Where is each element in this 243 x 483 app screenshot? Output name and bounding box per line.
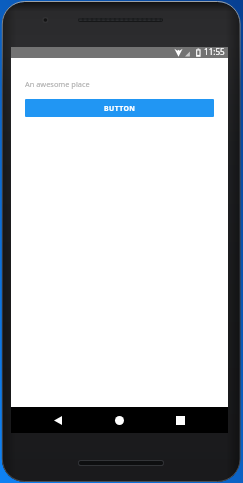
staticText: 11:55 xyxy=(204,46,225,57)
staticText: BUTTON xyxy=(104,104,136,113)
button[interactable]: BUTTON xyxy=(25,99,214,117)
button[interactable]: Recent apps xyxy=(163,407,197,433)
button[interactable]: Home xyxy=(102,407,136,433)
button[interactable]: Back xyxy=(41,407,75,433)
staticText: An awesome place xyxy=(25,79,90,89)
